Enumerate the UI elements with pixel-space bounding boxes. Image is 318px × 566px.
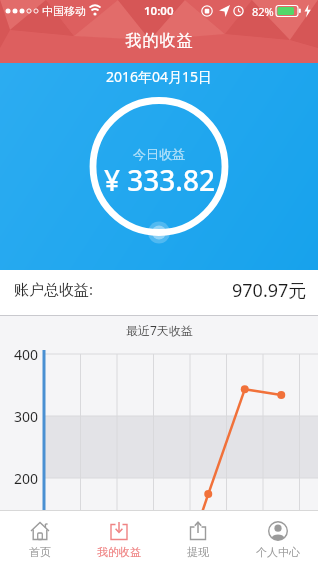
staticText: 400: [10, 345, 38, 364]
staticText: 账户总收益:: [14, 279, 94, 299]
staticText: 今日收益: [133, 146, 185, 162]
staticText: 最近7天收益: [126, 322, 193, 338]
button[interactable]: 个人中心: [238, 511, 318, 566]
button[interactable]: 提现: [158, 511, 238, 566]
staticText: 200: [10, 469, 38, 488]
staticText: ¥ 333.82: [104, 161, 215, 199]
staticText: 中国移动: [42, 4, 86, 18]
staticText: 首页: [29, 545, 51, 559]
button[interactable]: 2016年04月15日: [106, 67, 213, 86]
button[interactable]: 账户总收益:: [0, 270, 318, 315]
staticText: 我的收益: [97, 545, 141, 559]
staticText: 个人中心: [256, 545, 300, 559]
staticText: 970.97元: [232, 278, 307, 303]
staticText: 提现: [187, 545, 209, 559]
staticText: 82%: [252, 4, 274, 19]
staticText: 我的收益: [125, 31, 193, 51]
button[interactable]: 首页: [0, 511, 79, 566]
staticText: 300: [10, 407, 38, 426]
staticText: 10:00: [144, 3, 174, 19]
button[interactable]: 我的收益: [79, 511, 158, 566]
